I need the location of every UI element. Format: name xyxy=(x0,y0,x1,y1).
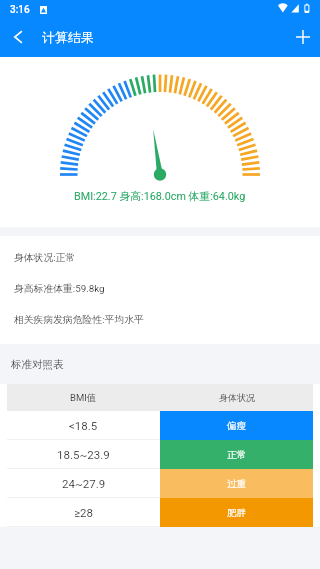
button[interactable]: Add xyxy=(286,19,320,55)
staticText: ≥28 xyxy=(74,506,93,519)
staticText: 相关疾病发病危险性:平均水平 xyxy=(14,314,144,326)
staticText: 24~27.9 xyxy=(62,477,106,490)
staticText: 身体状况 xyxy=(219,392,255,403)
staticText: 过重 xyxy=(227,478,246,490)
staticText: 计算结果 xyxy=(42,29,94,45)
staticText: 肥胖 xyxy=(227,507,246,519)
staticText: 偏瘦 xyxy=(227,420,246,432)
staticText: <18.5 xyxy=(69,419,98,432)
staticText: 标准对照表 xyxy=(11,358,64,371)
button[interactable]: Back xyxy=(0,19,36,55)
staticText: 身高标准体重:59.8kg xyxy=(14,283,105,295)
staticText: BMI值 xyxy=(70,392,97,404)
staticText: BMI:22.7 身高:168.0cm 体重:64.0kg xyxy=(74,190,246,204)
staticText: 正常 xyxy=(227,449,246,461)
staticText: 18.5~23.9 xyxy=(57,448,110,461)
staticText: 身体状况:正常 xyxy=(14,252,76,264)
staticText: 3:16 xyxy=(10,4,30,16)
